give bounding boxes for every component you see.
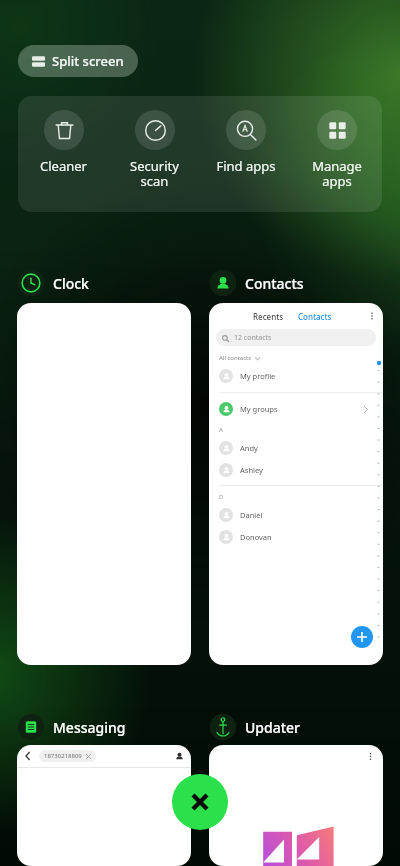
button[interactable]: Security scan bbox=[109, 96, 200, 190]
staticText: Contacts bbox=[298, 311, 332, 322]
button[interactable]: Cleaner bbox=[18, 96, 109, 175]
staticText: Contacts bbox=[245, 274, 304, 293]
button[interactable]: Updater bbox=[210, 714, 301, 740]
button[interactable]: Messaging bbox=[18, 714, 126, 740]
button[interactable]: Find apps bbox=[200, 96, 291, 175]
button[interactable]: Split screen bbox=[18, 45, 138, 77]
staticText: Andy bbox=[240, 443, 258, 453]
button[interactable]: Add contact bbox=[351, 626, 373, 648]
staticText: Ashley bbox=[240, 465, 263, 475]
staticText: A bbox=[219, 426, 223, 434]
staticText: Security scan bbox=[130, 157, 179, 190]
button[interactable]: Manage apps bbox=[291, 96, 382, 190]
button[interactable]: Close all apps bbox=[172, 774, 228, 830]
staticText: Recents bbox=[253, 311, 284, 322]
staticText: Clock bbox=[53, 274, 89, 293]
staticText: Messaging bbox=[53, 718, 126, 737]
button[interactable]: Clock bbox=[18, 270, 89, 296]
button[interactable] bbox=[209, 745, 383, 866]
staticText: My profile bbox=[240, 371, 276, 381]
staticText: Find apps bbox=[216, 157, 276, 175]
staticText: My groups bbox=[240, 404, 278, 414]
button[interactable]: 18730218809 bbox=[17, 745, 191, 866]
staticText: Manage apps bbox=[312, 157, 362, 190]
staticText: Updater bbox=[245, 718, 301, 737]
button[interactable]: Contacts bbox=[210, 270, 304, 296]
button[interactable]: Recents bbox=[209, 303, 383, 665]
staticText: D bbox=[219, 493, 224, 501]
button[interactable] bbox=[17, 303, 191, 665]
staticText: All contacts bbox=[219, 354, 252, 362]
staticText: Donovan bbox=[240, 532, 272, 542]
staticText: 18730218809 bbox=[44, 752, 82, 760]
staticText: Split screen bbox=[52, 52, 124, 70]
staticText: 12 contacts bbox=[234, 333, 272, 343]
staticText: Daniel bbox=[240, 510, 263, 520]
staticText: Cleaner bbox=[40, 157, 87, 175]
